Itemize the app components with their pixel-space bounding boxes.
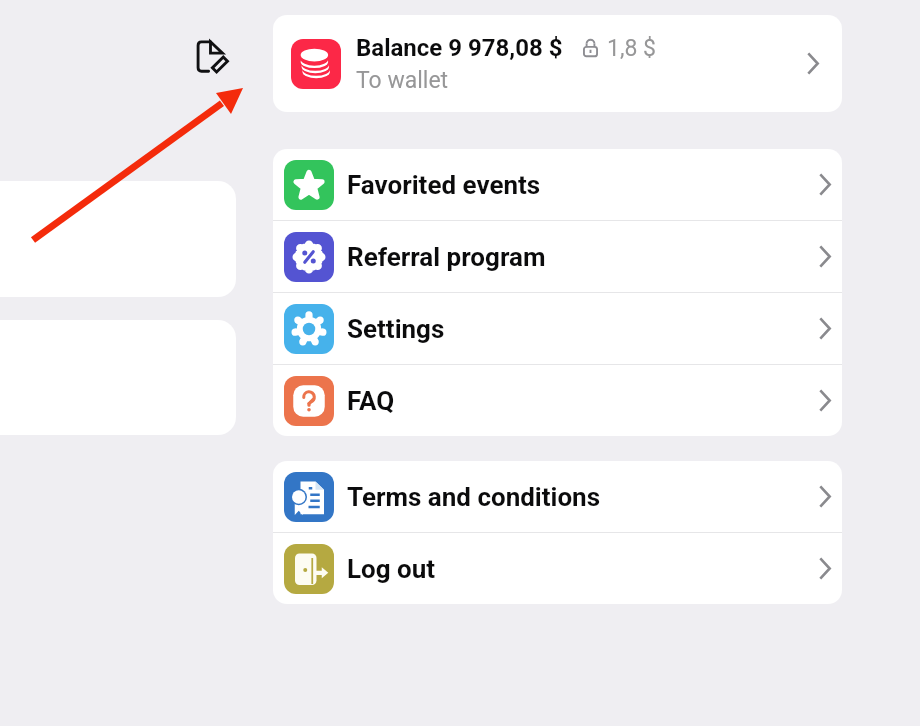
button[interactable]: Balance 9 978,08 $	[273, 15, 842, 112]
staticText: Terms and conditions	[347, 482, 601, 512]
button[interactable]: Settings	[273, 293, 842, 364]
staticText: Referral program	[347, 242, 546, 272]
staticText: Balance 9 978,08 $	[356, 34, 563, 62]
staticText: Favorited events	[347, 170, 541, 200]
staticText: Log out	[347, 554, 436, 584]
staticText: 1,8 $	[607, 35, 657, 62]
staticText: FAQ	[347, 386, 395, 416]
button[interactable]: Edit profile	[192, 37, 234, 79]
button[interactable]: Terms and conditions	[273, 461, 842, 532]
button[interactable]: Referral program	[273, 221, 842, 292]
staticText: To wallet	[356, 67, 449, 94]
button[interactable]: Log out	[273, 533, 842, 604]
button[interactable]: Card	[0, 181, 236, 297]
button[interactable]: Favorited events	[273, 149, 842, 220]
staticText: Settings	[347, 314, 445, 344]
button[interactable]: FAQ	[273, 365, 842, 436]
